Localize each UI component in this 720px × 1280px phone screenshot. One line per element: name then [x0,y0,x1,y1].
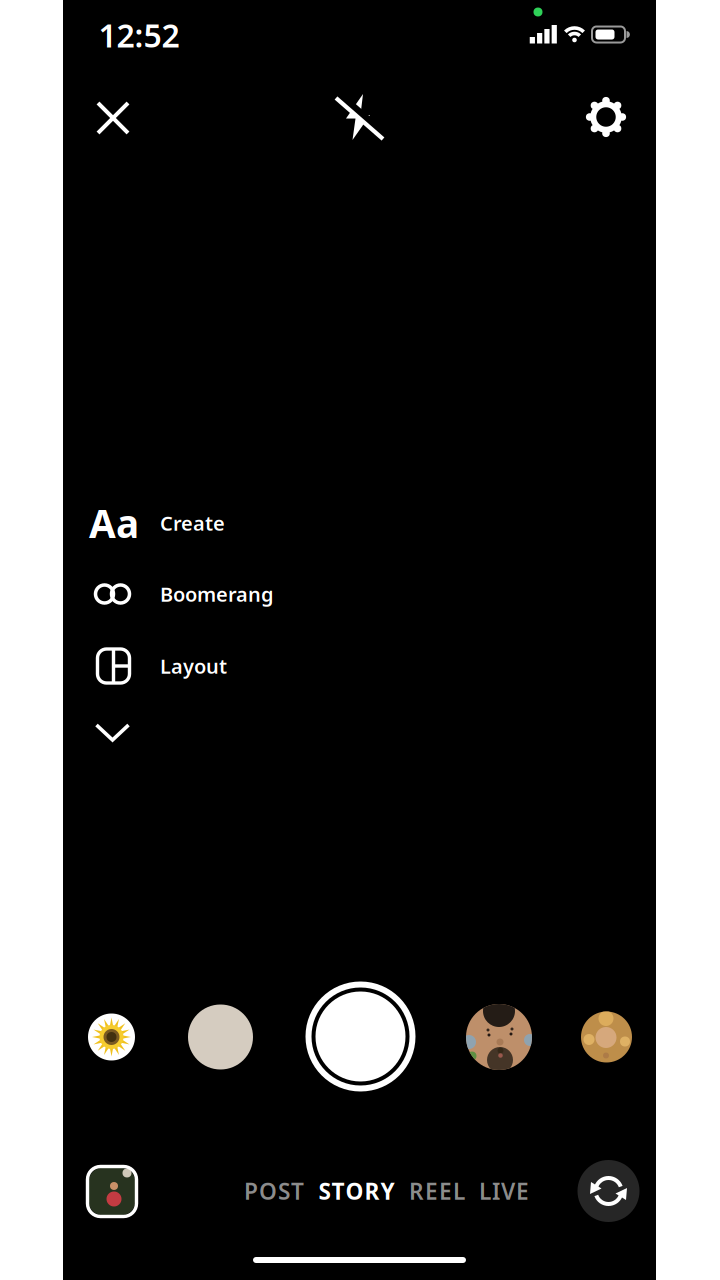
button[interactable]: POST [244,1176,304,1206]
staticText: STORY [318,1176,394,1206]
button[interactable]: Take photo [305,981,415,1091]
staticText: Boomerang [160,581,274,607]
staticText: POST [244,1176,304,1206]
staticText: Layout [160,653,227,679]
button[interactable]: LIVE [479,1176,529,1206]
button[interactable]: Settings [581,92,631,142]
button[interactable]: More options [90,717,134,747]
button[interactable]: Boomerang [96,557,356,631]
button[interactable]: Face effect [581,1011,632,1062]
button[interactable]: Aa [96,486,356,560]
staticText: REEL [409,1176,465,1206]
button[interactable]: Layout [96,629,356,703]
button[interactable]: Flash off [333,92,383,142]
button[interactable]: Sunflower effect [88,1013,135,1060]
button[interactable]: Open gallery [87,1166,137,1217]
button[interactable]: Close [90,95,136,141]
staticText: 12:52 [98,14,179,56]
staticText: LIVE [479,1176,529,1206]
staticText: Create [160,510,225,536]
button[interactable]: Switch camera [577,1160,639,1222]
button[interactable]: Effect [188,1004,253,1069]
button[interactable]: STORY [318,1176,394,1206]
button[interactable]: Face effect [466,1004,532,1070]
button[interactable]: REEL [409,1176,465,1206]
staticText: Aa [89,497,139,549]
